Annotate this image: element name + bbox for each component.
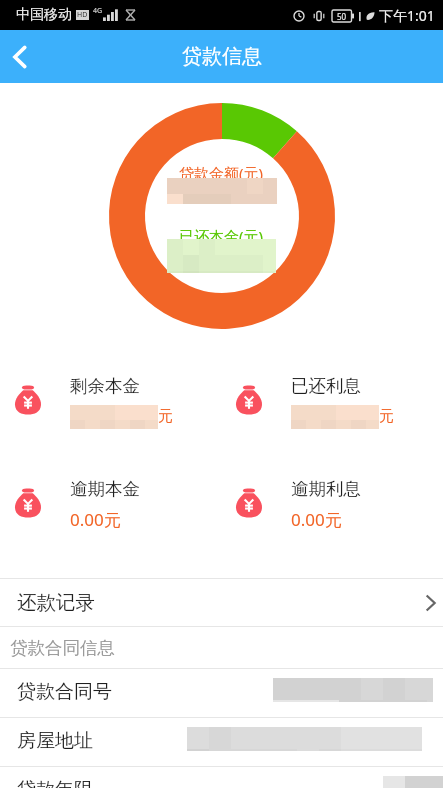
button[interactable]: 贷款年限 [0, 767, 443, 788]
staticText: 已还本金(元) [179, 226, 264, 246]
staticText: 剩余本金 [70, 375, 140, 397]
staticText: 0.00元 [291, 508, 342, 531]
staticText: 还款记录 [17, 590, 95, 615]
staticText: 贷款合同号 [17, 680, 112, 704]
staticText: 贷款年限 [17, 778, 93, 788]
staticText: 中国移动 [16, 6, 72, 24]
staticText: 已还利息 [291, 375, 361, 397]
staticText: 逾期本金 [70, 478, 140, 500]
staticText: HD [77, 10, 88, 20]
staticText: 贷款金额(元) [179, 163, 264, 183]
staticText: 元 [158, 407, 173, 426]
staticText: 50 [337, 11, 347, 22]
staticText: 元 [379, 407, 394, 426]
staticText: 下午1:01 [379, 6, 435, 25]
button[interactable]: 贷款合同号 [0, 669, 443, 717]
staticText: 房屋地址 [17, 729, 93, 753]
staticText: 4G [93, 6, 103, 16]
button[interactable]: 还款记录 [0, 579, 443, 626]
staticText: ❙ [356, 11, 364, 21]
button[interactable]: 房屋地址 [0, 718, 443, 766]
staticText: 贷款信息 [182, 44, 262, 69]
button[interactable]: Back [0, 30, 44, 83]
staticText: 贷款合同信息 [10, 637, 115, 659]
staticText: 0.00元 [70, 508, 121, 531]
staticText: 逾期利息 [291, 478, 361, 500]
